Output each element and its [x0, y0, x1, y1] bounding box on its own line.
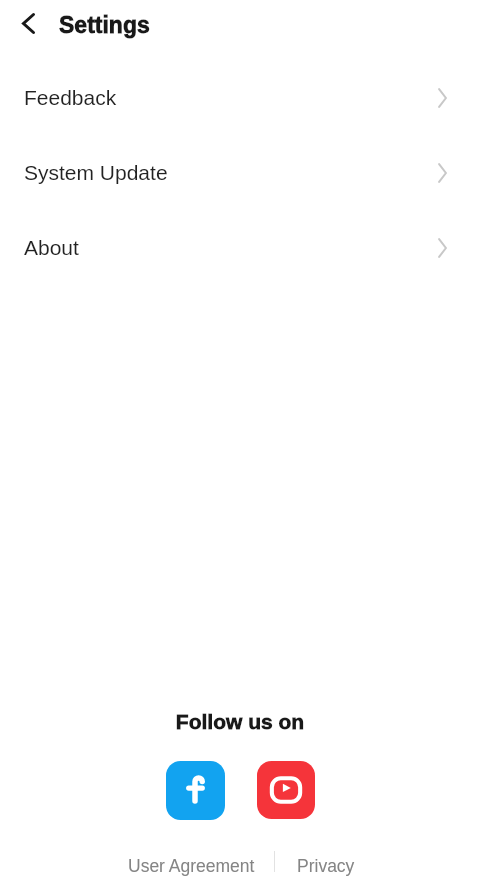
staticText: Settings [59, 12, 150, 38]
button[interactable]: Facebook [166, 761, 225, 820]
button[interactable]: Privacy [275, 850, 363, 882]
button[interactable]: Feedback [0, 60, 480, 135]
button[interactable]: YouTube [257, 761, 315, 819]
button[interactable]: Back [6, 1, 50, 45]
staticText: Privacy [297, 856, 355, 876]
staticText: System Update [24, 161, 168, 184]
staticText: User Agreement [128, 856, 255, 876]
staticText: About [24, 236, 79, 259]
button[interactable]: User Agreement [118, 850, 274, 882]
staticText: Follow us on [0, 710, 480, 733]
button[interactable]: About [0, 210, 480, 285]
staticText: Feedback [24, 86, 117, 109]
button[interactable]: System Update [0, 135, 480, 210]
